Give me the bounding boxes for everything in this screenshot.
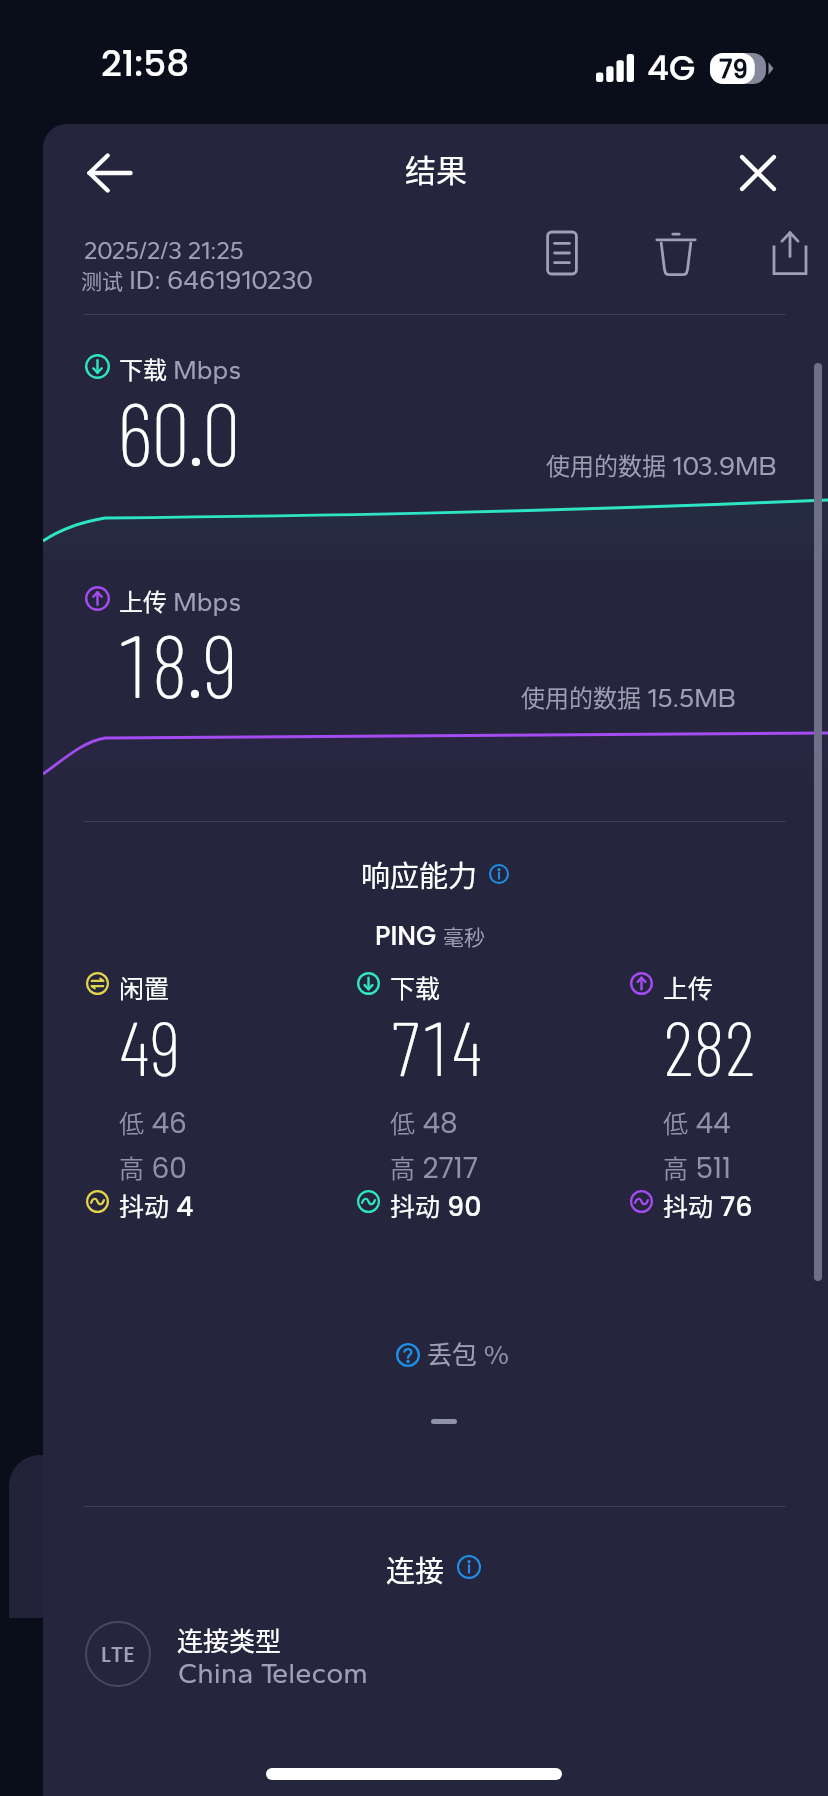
staticText: 18.9 xyxy=(116,610,239,716)
button[interactable]: Delete xyxy=(644,221,708,285)
staticText: 282 xyxy=(663,1000,756,1091)
staticText: 79 xyxy=(719,53,748,84)
staticText: PING 毫秒 xyxy=(375,918,485,954)
button[interactable]: Summary xyxy=(530,221,594,285)
button[interactable]: LTE xyxy=(73,1606,813,1702)
staticText: 低 44 xyxy=(663,1104,731,1143)
staticText: 下载 Mbps xyxy=(119,351,242,386)
button[interactable]: Close xyxy=(719,134,797,212)
staticText: 使用的数据 15.5MB xyxy=(521,679,736,714)
staticText: 714 xyxy=(390,1000,483,1091)
staticText: 抖动 90 xyxy=(390,1187,482,1225)
button[interactable]: Responsiveness info xyxy=(484,859,514,889)
button[interactable]: Back xyxy=(70,134,148,212)
staticText: 高 2717 xyxy=(390,1149,479,1188)
staticText: 低 46 xyxy=(119,1104,187,1143)
staticText: 高 60 xyxy=(119,1149,187,1188)
staticText: 低 48 xyxy=(390,1104,458,1143)
staticText: 丢包 % xyxy=(427,1335,510,1371)
staticText: 21:58 xyxy=(101,38,190,88)
staticText: 测试 ID: 6461910230 xyxy=(81,264,314,295)
staticText: 下载 xyxy=(390,969,441,1005)
staticText: 上传 Mbps xyxy=(119,583,242,618)
staticText: LTE xyxy=(101,1639,135,1670)
button[interactable]: Connection info xyxy=(454,1552,484,1582)
staticText: 抖动 76 xyxy=(663,1187,753,1225)
staticText: 60.0 xyxy=(117,378,240,484)
staticText: 使用的数据 103.9MB xyxy=(546,447,777,482)
staticText: China Telecom xyxy=(178,1655,368,1690)
staticText: 上传 xyxy=(663,969,714,1005)
staticText: 高 511 xyxy=(663,1149,731,1188)
button[interactable]: Share xyxy=(758,221,822,285)
staticText: 响应能力 xyxy=(361,853,478,895)
staticText: 抖动 4 xyxy=(119,1187,194,1225)
staticText: 连接类型 xyxy=(177,1621,282,1659)
staticText: 2025/2/3 21:25 xyxy=(84,236,244,265)
staticText: 结果 xyxy=(405,146,467,191)
staticText: 4G xyxy=(647,44,696,92)
staticText: 连接 xyxy=(386,1548,445,1590)
button[interactable]: Packet loss info xyxy=(393,1340,423,1370)
staticText: 闲置 xyxy=(119,969,170,1005)
staticText: 49 xyxy=(119,1000,181,1091)
